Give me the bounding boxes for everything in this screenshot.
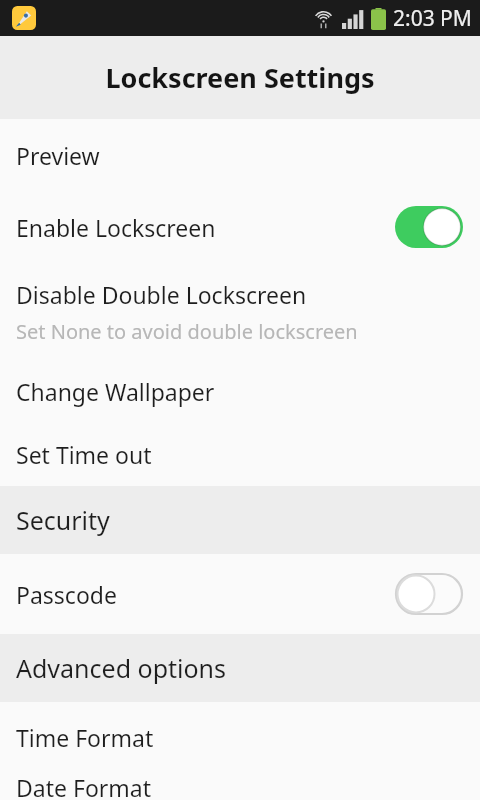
button[interactable]: Change Wallpaper: [0, 360, 480, 423]
button[interactable]: Date Format: [0, 772, 480, 800]
staticText: Set Time out: [16, 439, 152, 470]
staticText: Advanced options: [16, 651, 227, 685]
button[interactable]: Time Format: [0, 702, 480, 772]
staticText: Disable Double Lockscreen: [16, 279, 307, 310]
staticText: Change Wallpaper: [16, 376, 215, 407]
staticText: Preview: [16, 140, 100, 171]
staticText: Enable Lockscreen: [16, 212, 395, 243]
staticText: Lockscreen Settings: [105, 59, 375, 96]
staticText: Passcode: [16, 579, 395, 610]
button[interactable]: Preview: [0, 119, 480, 191]
other: Toggle off: [395, 573, 463, 615]
staticText: 2:03 PM: [393, 4, 472, 33]
button[interactable]: Set Time out: [0, 423, 480, 486]
staticText: Set None to avoid double lockscreen: [16, 318, 358, 345]
other: Toggle on: [395, 206, 463, 248]
staticText: Time Format: [16, 722, 154, 753]
button[interactable]: Passcode: [0, 554, 480, 634]
button[interactable]: Enable Lockscreen: [0, 191, 480, 263]
button[interactable]: Disable Double Lockscreen: [0, 263, 480, 360]
staticText: Date Format: [16, 772, 152, 800]
staticText: Security: [16, 503, 110, 537]
